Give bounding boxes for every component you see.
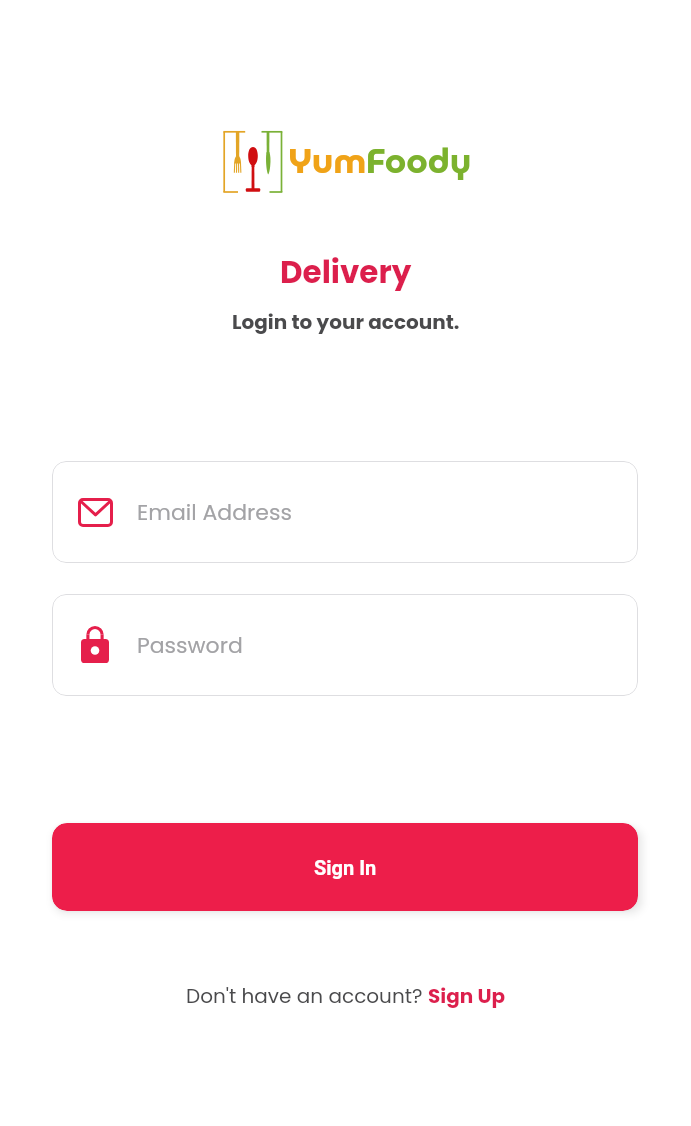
- staticText: Delivery: [280, 250, 412, 293]
- staticText: YumFoody: [288, 133, 472, 188]
- staticText: Email Address: [137, 497, 292, 528]
- staticText: Password: [137, 630, 243, 661]
- button[interactable]: Sign In: [52, 823, 638, 911]
- button[interactable]: Sign Up: [428, 982, 506, 1010]
- staticText: Sign Up: [428, 982, 506, 1010]
- staticText: Login to your account.: [232, 308, 460, 336]
- button[interactable]: Password: [52, 594, 638, 696]
- other: Password: [78, 627, 113, 664]
- staticText: Don't have an account?: [186, 982, 428, 1010]
- button[interactable]: Email: [52, 461, 638, 563]
- other: Email: [78, 498, 113, 527]
- staticText: Sign In: [314, 856, 377, 879]
